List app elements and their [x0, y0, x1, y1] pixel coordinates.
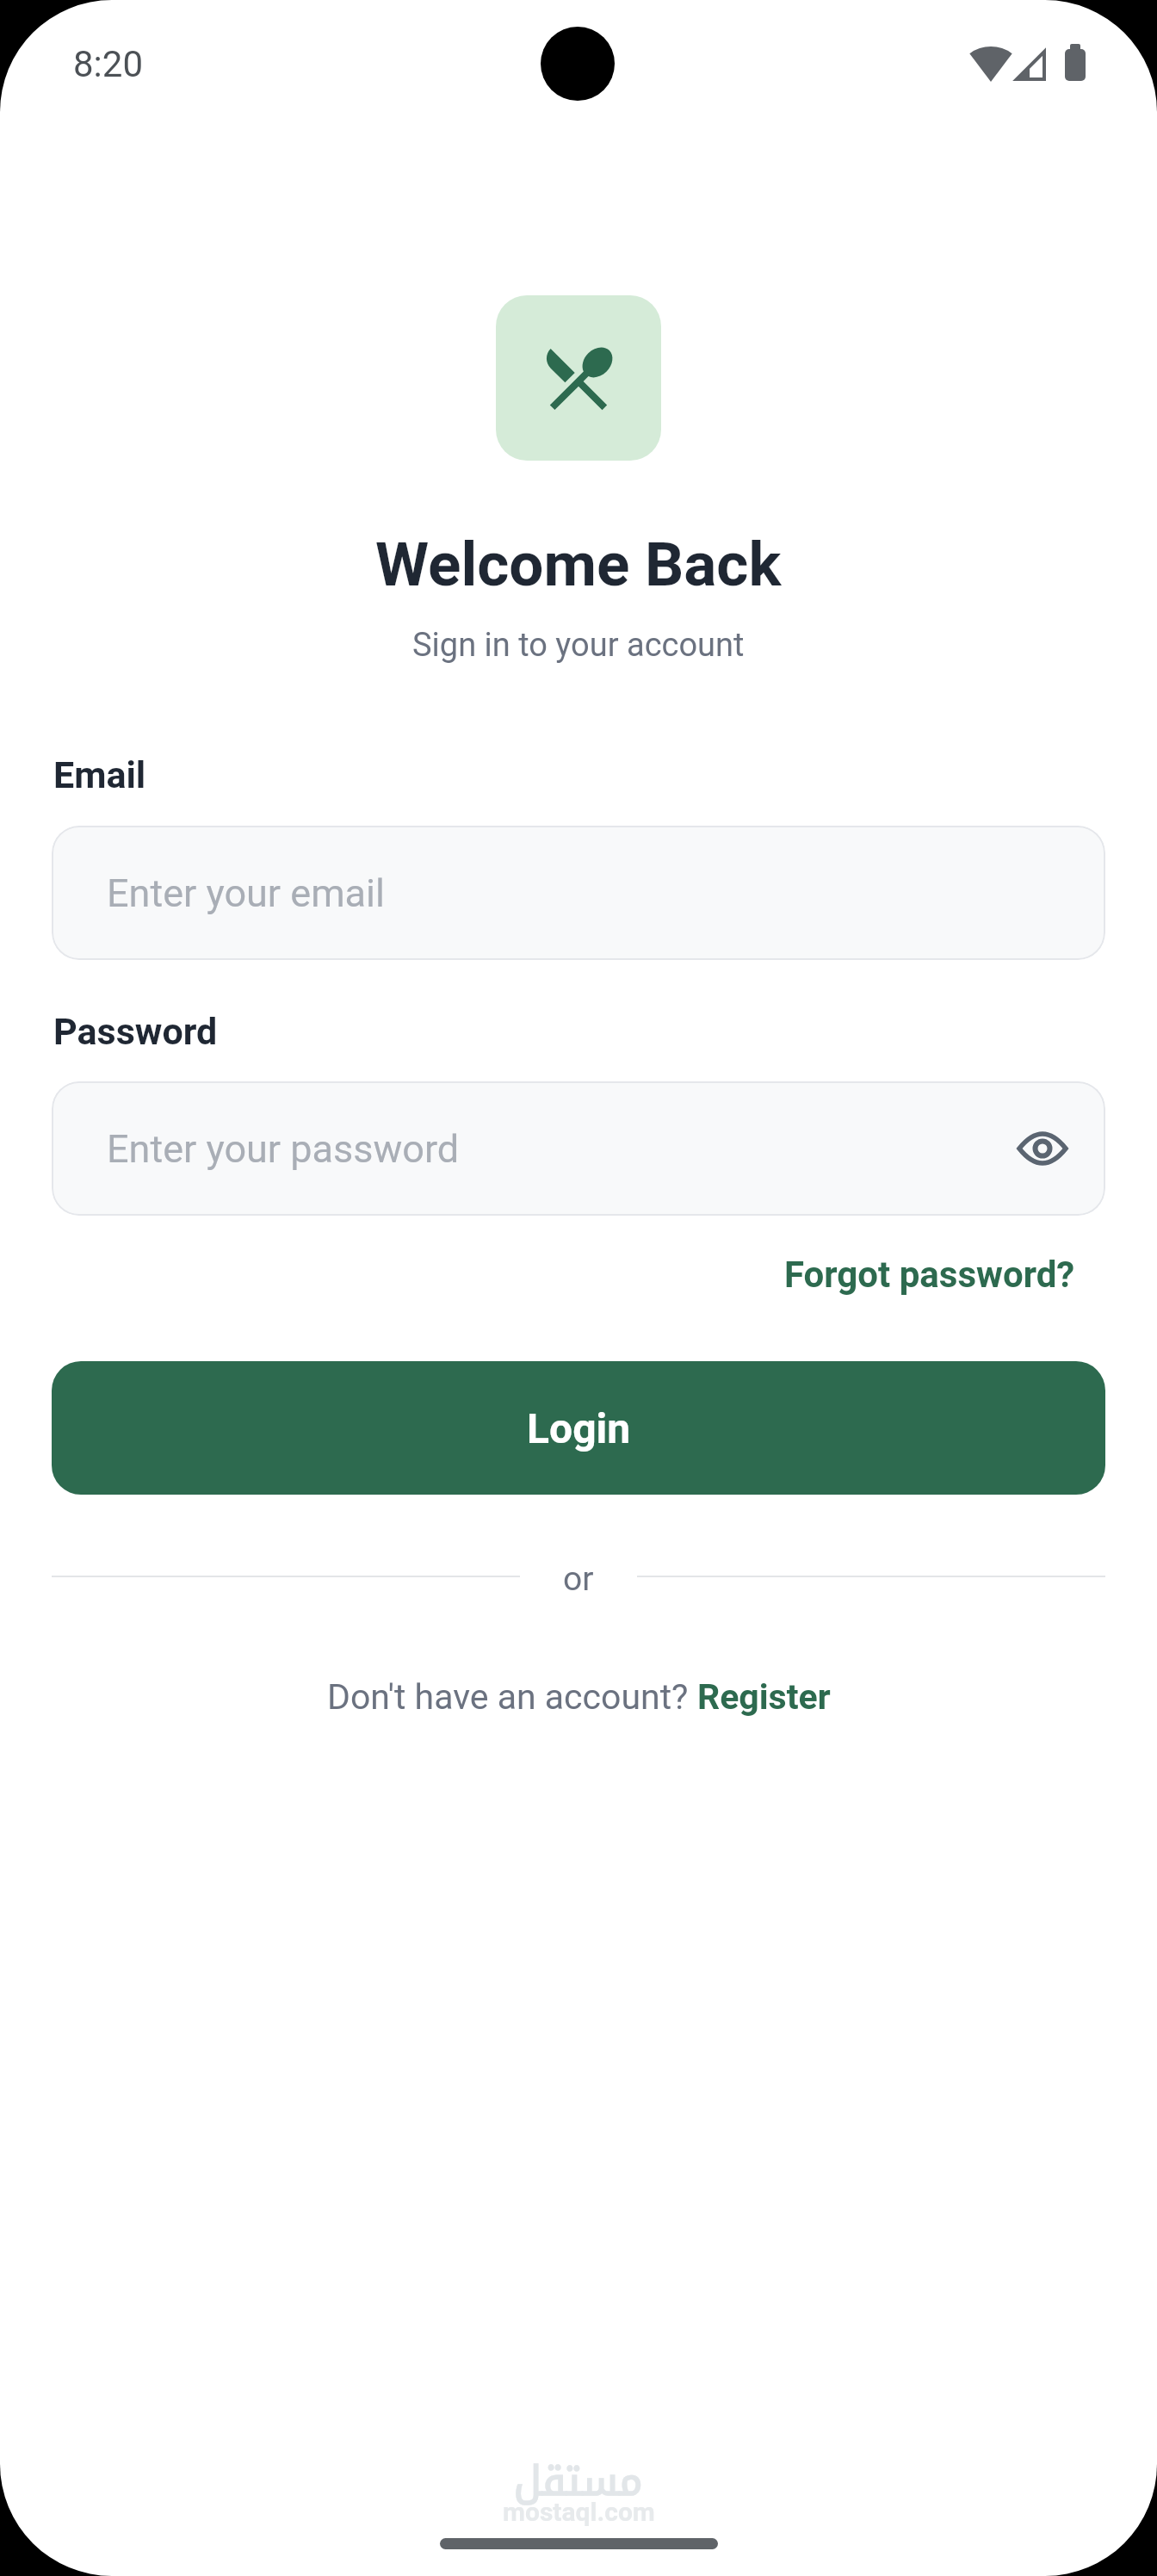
staticText: 8:20 — [73, 43, 143, 85]
staticText: Welcome Back — [375, 529, 782, 600]
staticText: or — [563, 1559, 594, 1594]
staticText: Enter your email — [107, 870, 385, 916]
button[interactable]: Enter your email — [52, 826, 1105, 960]
staticText: Don't have an account? — [327, 1676, 697, 1718]
staticText: مستقل — [514, 2443, 643, 2520]
staticText: Enter your password — [107, 1126, 460, 1172]
staticText: Sign in to your account — [412, 626, 745, 665]
staticText: Password — [53, 1010, 218, 1053]
button[interactable]: Forgot password? — [784, 1254, 1075, 1296]
button[interactable]: Enter your password — [52, 1081, 1105, 1216]
button[interactable]: Register — [697, 1676, 831, 1718]
button[interactable]: Login — [52, 1361, 1105, 1495]
staticText: Email — [53, 753, 146, 796]
staticText: Login — [527, 1404, 631, 1452]
staticText: mostaql.com — [503, 2497, 655, 2527]
